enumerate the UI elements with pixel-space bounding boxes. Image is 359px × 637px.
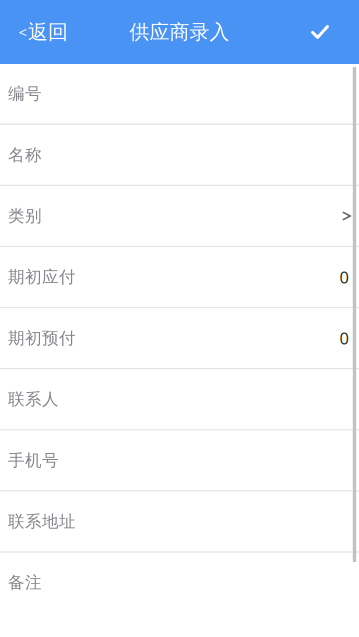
button[interactable]: 名称 [0,125,359,185]
button[interactable]: 编号 [0,64,359,124]
staticText: 手机号 [8,450,59,471]
staticText: 名称 [8,144,42,165]
button[interactable]: 联系地址 [0,492,359,551]
staticText: 返回 [28,20,68,44]
staticText: 类别 [8,206,42,226]
button[interactable]: 联系人 [0,369,359,429]
button[interactable]: 期初应付 [0,247,359,307]
staticText: 期初应付 [8,267,76,287]
staticText: 0 [339,266,348,288]
staticText: 0 [339,327,348,349]
button[interactable]: < [0,0,78,64]
staticText: 供应商录入 [129,20,229,44]
staticText: 联系人 [8,389,59,410]
button[interactable]: 类别 [0,186,359,246]
button[interactable]: 期初预付 [0,308,359,368]
button[interactable]: Save [297,0,359,64]
staticText: 联系地址 [8,511,76,532]
staticText: 编号 [8,83,42,104]
staticText: < [18,22,26,42]
button[interactable]: 手机号 [0,431,359,490]
staticText: 备注 [8,572,42,593]
staticText: 期初预付 [8,328,76,349]
button[interactable]: 备注 [0,553,359,612]
